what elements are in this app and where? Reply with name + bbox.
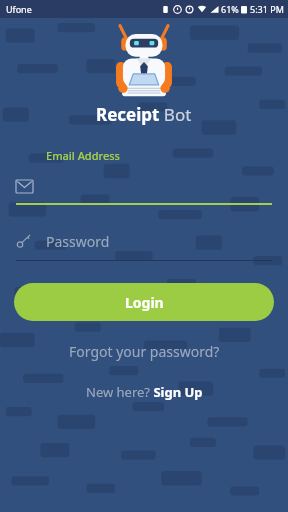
button[interactable]: New here? Sign Up (78, 380, 211, 404)
other: Email (16, 180, 33, 193)
staticText: Login (125, 293, 164, 312)
other: Password (16, 233, 32, 249)
staticText: Email Address (46, 148, 120, 163)
button[interactable]: Password (16, 229, 272, 253)
staticText: Receipt Bot (96, 103, 192, 126)
staticText: Password (46, 232, 110, 251)
button[interactable]: Forgot your password? (61, 339, 228, 364)
staticText: 61% (221, 3, 239, 15)
button[interactable]: Login (14, 283, 274, 321)
staticText: 5:31 PM (250, 3, 284, 15)
staticText: Ufone (6, 3, 32, 15)
staticText: Forgot your password? (69, 342, 220, 361)
staticText: New here? Sign Up (86, 383, 203, 401)
